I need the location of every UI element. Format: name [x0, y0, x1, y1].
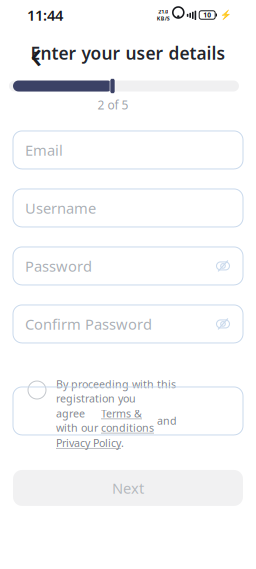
button[interactable]: Next — [13, 470, 243, 506]
button[interactable]: Confirm Password — [13, 305, 243, 343]
staticText: ‹ — [30, 26, 42, 79]
staticText: Enter your user details — [30, 41, 225, 64]
staticText: KB/S — [157, 15, 170, 22]
staticText: agree with our — [56, 406, 101, 435]
staticText: 2 of 5 — [97, 97, 128, 113]
button[interactable]: Username — [13, 189, 243, 227]
button[interactable]: By proceeding with this registration you — [13, 387, 243, 435]
staticText: and — [154, 413, 177, 428]
staticText: Confirm Password — [25, 314, 152, 334]
staticText: Username — [25, 198, 96, 218]
staticText: . — [121, 436, 124, 450]
staticText: Next — [112, 478, 144, 498]
staticText: 21.0 — [158, 8, 168, 15]
button[interactable]: Password — [13, 247, 243, 285]
staticText: 11:44 — [27, 5, 63, 25]
staticText: By proceeding with this registration you — [56, 377, 176, 405]
staticText: Password — [25, 256, 92, 276]
staticText: Email — [25, 140, 63, 160]
staticText: Terms & conditions — [101, 406, 154, 435]
staticText: Privacy Policy — [56, 436, 121, 450]
staticText: 10 — [203, 11, 211, 19]
button[interactable]: Back — [13, 38, 49, 68]
button[interactable]: Email — [13, 131, 243, 169]
staticText: ⚡ — [220, 10, 232, 20]
